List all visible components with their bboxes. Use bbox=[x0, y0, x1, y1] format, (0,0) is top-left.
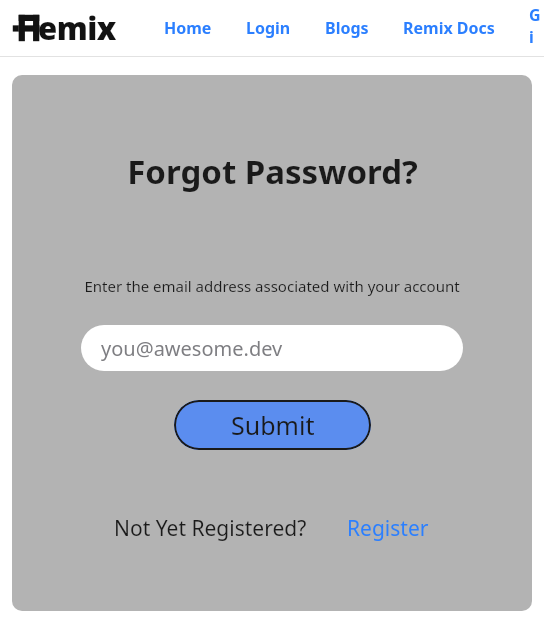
staticText: emix bbox=[38, 7, 116, 49]
button[interactable]: you@awesome.dev bbox=[81, 325, 463, 371]
button[interactable]: Home bbox=[160, 13, 216, 43]
staticText: Not Yet Registered? bbox=[114, 514, 307, 543]
staticText: Enter the email address associated with … bbox=[84, 276, 460, 296]
button[interactable]: Remix Docs bbox=[399, 13, 499, 43]
staticText: Blogs bbox=[325, 17, 369, 39]
staticText: you@awesome.dev bbox=[101, 335, 283, 362]
staticText: Forgot Password? bbox=[127, 149, 418, 194]
button[interactable]: Submit bbox=[174, 400, 371, 450]
staticText: Remix Docs bbox=[403, 17, 495, 39]
button[interactable]: Login bbox=[242, 13, 295, 43]
button[interactable]: Blogs bbox=[321, 13, 373, 43]
button[interactable]: GitHub bbox=[525, 0, 544, 56]
staticText: Login bbox=[246, 17, 291, 39]
staticText: Submit bbox=[231, 408, 315, 442]
staticText: GitHub bbox=[529, 4, 540, 52]
staticText: Register bbox=[347, 514, 429, 543]
button[interactable]: Register bbox=[345, 512, 431, 545]
staticText: Home bbox=[164, 17, 212, 39]
button[interactable]: Remix home bbox=[12, 3, 120, 53]
